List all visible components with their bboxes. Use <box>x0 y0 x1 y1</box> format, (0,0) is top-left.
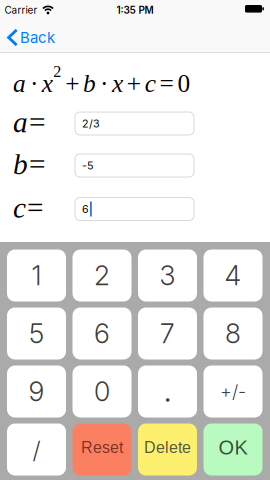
staticText: b <box>13 148 28 181</box>
staticText: Carrier <box>4 4 37 16</box>
staticText: 6 <box>82 202 89 215</box>
staticText: · <box>30 69 38 98</box>
button[interactable]: 5 <box>7 307 66 359</box>
staticText: 2 <box>53 63 61 80</box>
button[interactable]: +/- <box>203 365 262 417</box>
staticText: c <box>145 69 156 98</box>
staticText: 4 <box>224 259 241 292</box>
staticText: +/- <box>220 381 246 402</box>
staticText: a <box>13 69 26 98</box>
staticText: 8 <box>225 317 241 350</box>
button[interactable]: Reset <box>72 423 131 475</box>
staticText: 0 <box>94 375 110 408</box>
staticText: 1:35 PM <box>116 4 153 16</box>
staticText: Back <box>20 28 55 47</box>
staticText: . <box>164 375 171 408</box>
staticText: = <box>27 192 44 224</box>
staticText: = <box>29 148 46 181</box>
button[interactable]: 1 <box>7 249 66 301</box>
button[interactable]: . <box>138 365 197 417</box>
button[interactable]: Delete <box>138 423 197 475</box>
staticText: -5 <box>82 159 93 172</box>
staticText: / <box>32 435 40 464</box>
staticText: x <box>112 69 123 98</box>
button[interactable]: 0 <box>72 365 131 417</box>
button[interactable]: 9 <box>7 365 66 417</box>
staticText: 6 <box>94 317 110 350</box>
staticText: 5 <box>29 317 44 350</box>
button[interactable]: -5 <box>75 154 194 177</box>
staticText: 2 <box>94 259 110 292</box>
staticText: 1 <box>31 259 41 292</box>
button[interactable]: 4 <box>203 249 262 301</box>
button[interactable]: 2/3 <box>75 112 194 135</box>
button[interactable]: 6 <box>72 307 131 359</box>
button[interactable]: 2 <box>72 249 131 301</box>
staticText: 0 <box>177 69 190 98</box>
staticText: · <box>100 69 108 98</box>
button[interactable]: OK <box>203 423 262 475</box>
staticText: + <box>127 69 141 98</box>
button[interactable]: 3 <box>138 249 197 301</box>
staticText: 3 <box>159 259 175 292</box>
staticText: = <box>160 69 174 98</box>
staticText: 2/3 <box>82 117 100 130</box>
staticText: 7 <box>160 317 175 350</box>
staticText: Delete <box>144 439 191 456</box>
staticText: c <box>13 192 26 224</box>
staticText: Reset <box>81 439 123 456</box>
staticText: + <box>65 69 79 98</box>
staticText: b <box>83 69 96 98</box>
staticText: 9 <box>28 375 44 408</box>
button[interactable]: 7 <box>138 307 197 359</box>
staticText: = <box>29 106 46 139</box>
button[interactable]: 6 <box>75 197 194 220</box>
staticText: x <box>42 69 53 98</box>
button[interactable]: 8 <box>203 307 262 359</box>
button[interactable]: Back <box>7 28 55 47</box>
staticText: a <box>13 106 28 139</box>
button[interactable]: / <box>7 423 66 475</box>
staticText: OK <box>218 436 247 459</box>
